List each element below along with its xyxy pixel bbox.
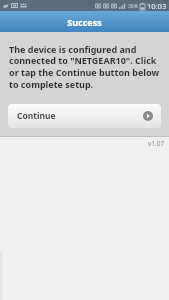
staticText: Success: [67, 16, 102, 28]
button[interactable]: Continue: [8, 104, 161, 128]
staticText: 36%: [128, 3, 138, 10]
staticText: The device is configured and connected t…: [9, 43, 160, 91]
staticText: 10:03: [147, 1, 167, 11]
staticText: Continue: [17, 110, 56, 122]
staticText: v1.07: [148, 139, 165, 148]
